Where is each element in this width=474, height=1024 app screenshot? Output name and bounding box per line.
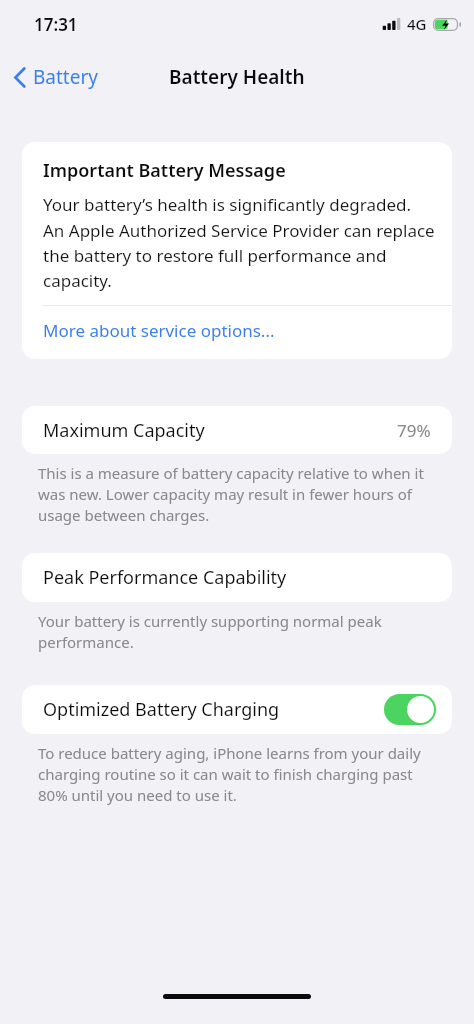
staticText: Peak Performance Capability	[43, 565, 287, 590]
staticText: Your battery is currently supporting nor…	[38, 611, 438, 653]
button[interactable]: Maximum Capacity	[22, 406, 452, 454]
staticText: Battery	[33, 64, 98, 90]
staticText: Battery Health	[169, 64, 305, 90]
staticText: 17:31	[34, 13, 78, 36]
staticText: 79%	[397, 419, 431, 442]
button[interactable]: Optimized Battery Charging	[384, 694, 436, 725]
staticText: More about service options...	[43, 319, 275, 342]
staticText: This is a measure of battery capacity re…	[38, 463, 438, 526]
button[interactable]: Peak Performance Capability	[22, 553, 452, 602]
staticText: To reduce battery aging, iPhone learns f…	[38, 743, 438, 806]
button[interactable]: More about service options...	[22, 306, 452, 359]
button[interactable]: Optimized Battery Charging	[22, 685, 452, 734]
staticText: Maximum Capacity	[43, 418, 397, 443]
staticText: Optimized Battery Charging	[43, 697, 384, 722]
staticText: Your battery’s health is significantly d…	[43, 193, 436, 292]
staticText: 4G	[407, 14, 427, 34]
button[interactable]: Battery	[0, 58, 110, 96]
staticText: Important Battery Message	[43, 158, 286, 183]
